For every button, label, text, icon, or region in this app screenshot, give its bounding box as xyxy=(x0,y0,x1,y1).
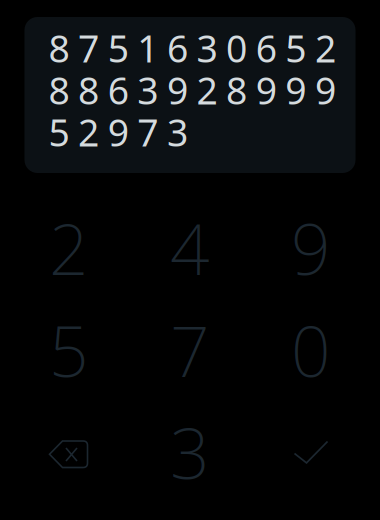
button[interactable]: 5 xyxy=(8,299,129,401)
button[interactable]: 4 xyxy=(129,197,250,299)
button[interactable]: 2 xyxy=(8,197,129,299)
staticText: 3 xyxy=(170,406,210,498)
staticText: 0 xyxy=(291,304,331,396)
staticText: 5 xyxy=(49,304,89,396)
staticText: 2 xyxy=(49,202,89,294)
staticText: 8751630652 xyxy=(48,23,336,73)
button[interactable]: 0 xyxy=(250,299,371,401)
button[interactable]: 9 xyxy=(250,197,371,299)
button[interactable]: Delete xyxy=(8,401,129,503)
button[interactable]: Confirm xyxy=(250,401,371,503)
staticText: 9 xyxy=(291,202,331,294)
staticText: 52973 xyxy=(48,107,188,157)
staticText: 7 xyxy=(170,304,210,396)
button[interactable]: 7 xyxy=(129,299,250,401)
button[interactable]: 3 xyxy=(129,401,250,503)
staticText: 4 xyxy=(170,202,210,294)
staticText: 8863928999 xyxy=(48,65,336,115)
